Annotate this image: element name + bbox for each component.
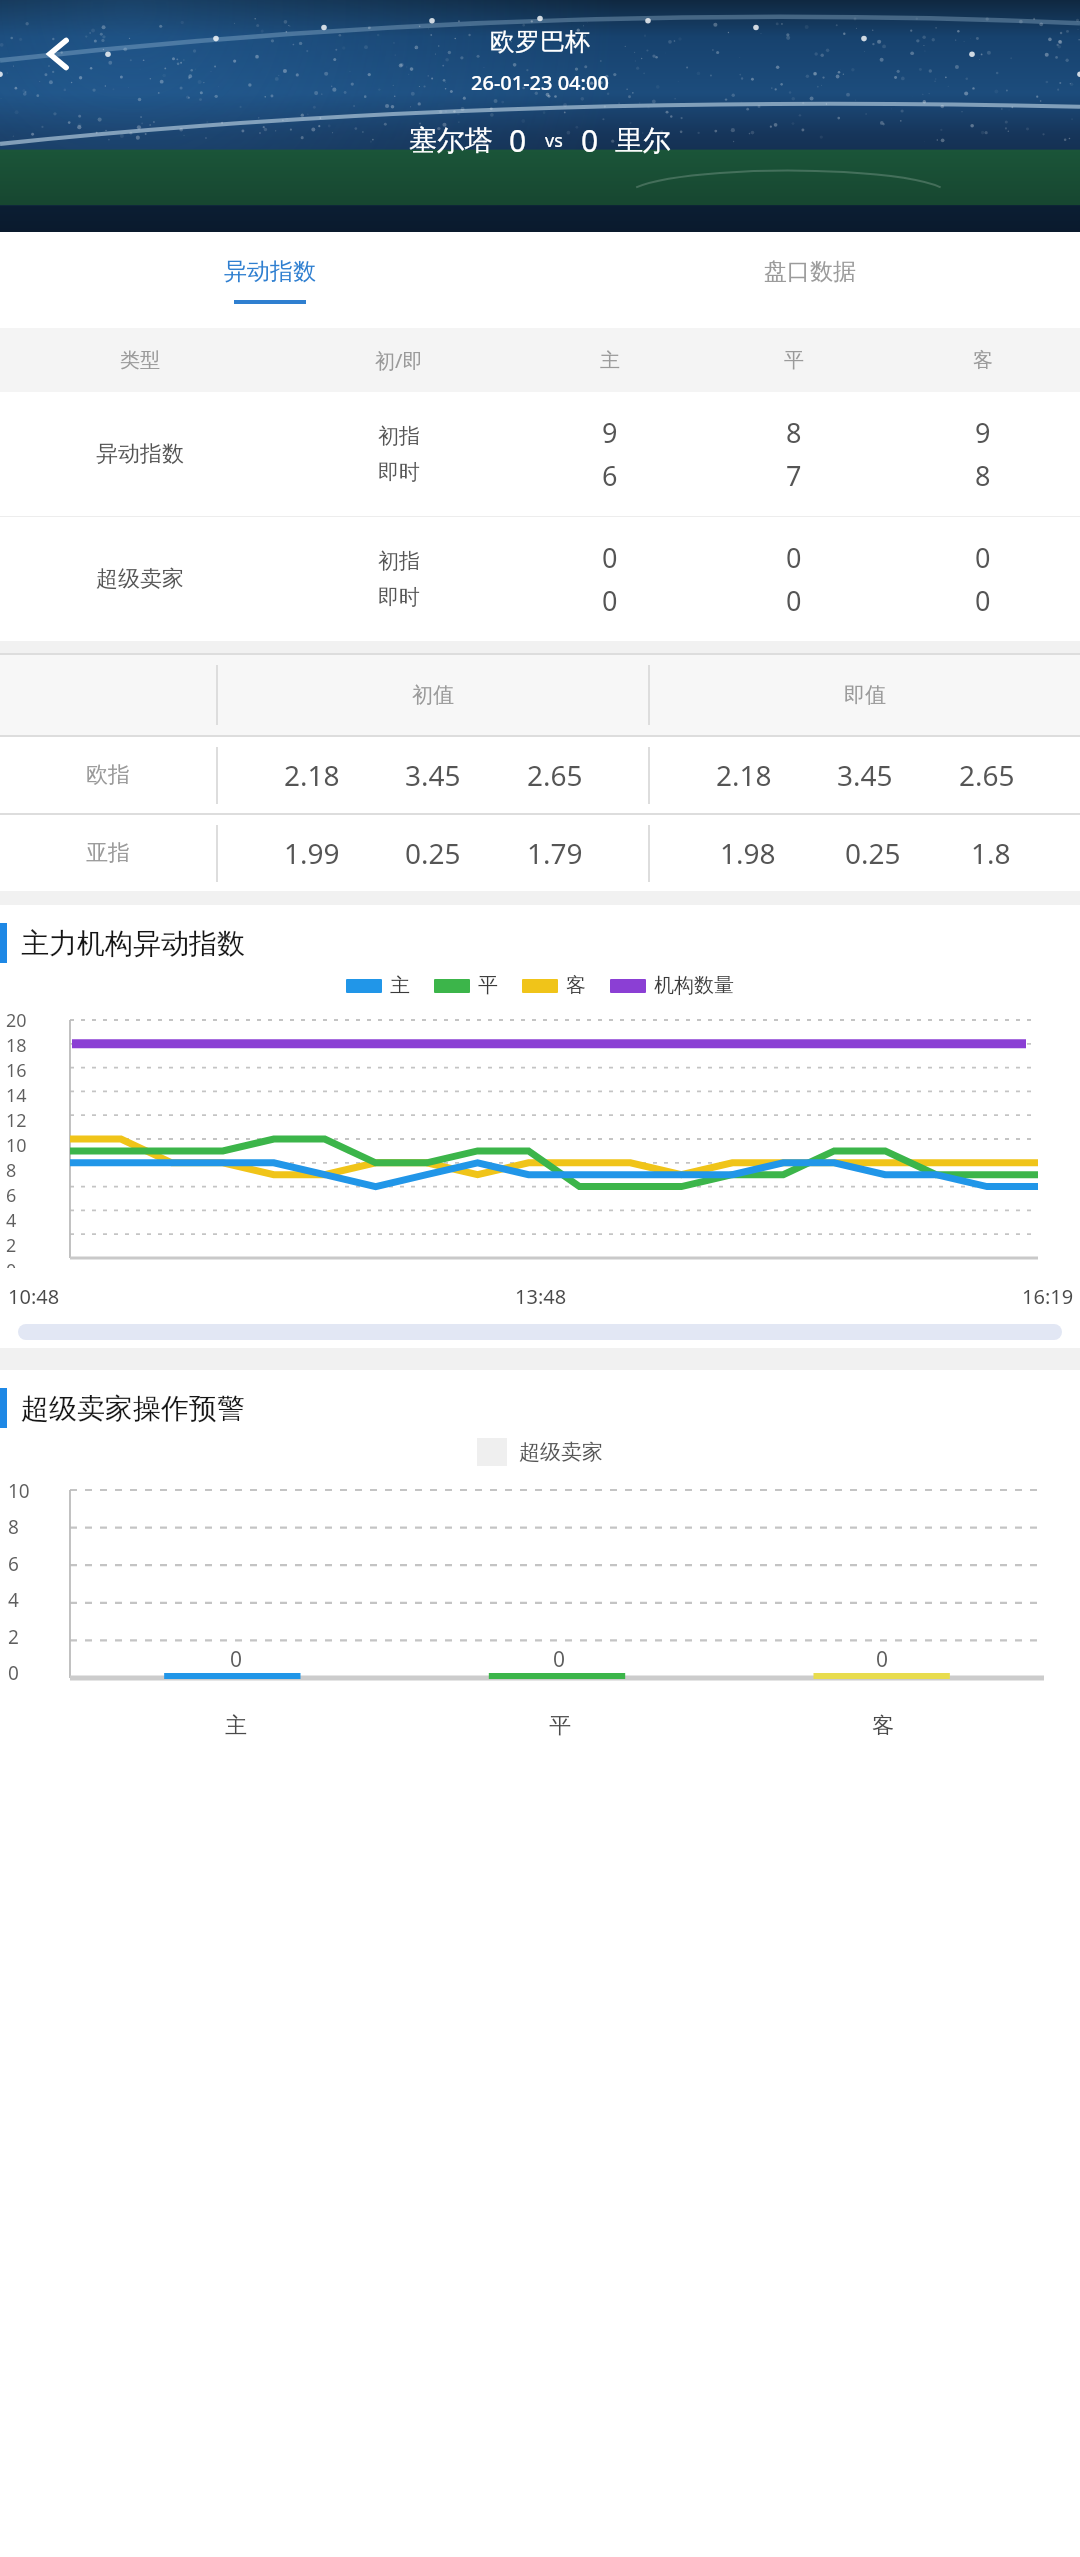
staticText: 4 [8,1587,44,1613]
staticText: 异动指数 [224,257,316,286]
staticText: 6 [602,457,618,494]
staticText: 0 [975,539,991,576]
button[interactable]: Back [26,22,90,86]
staticText: 2.65 [959,756,1015,794]
staticText: 3.45 [405,756,461,794]
staticText: 0 [876,1645,889,1674]
staticText: 主 [390,973,410,998]
staticText: 8 [786,414,802,451]
staticText: 平 [784,348,804,373]
staticText: 8 [6,1158,44,1183]
staticText: 即值 [844,682,886,708]
staticText: 9 [975,414,991,451]
staticText: 盘口数据 [764,257,856,286]
staticText: 超级卖家 [519,1439,603,1465]
staticText: 9 [602,414,618,451]
staticText: 26-01-23 04:00 [471,69,609,96]
staticText: 20 [6,1008,44,1033]
staticText: 7 [786,457,802,494]
staticText: 即时 [378,584,420,610]
button[interactable]: 超级卖家 [0,517,1080,641]
staticText: 18 [6,1033,44,1058]
staticText: 6 [6,1183,44,1208]
staticText: 2 [6,1233,44,1258]
staticText: 里尔 [615,123,671,158]
staticText: 客 [973,348,993,373]
staticText: 10 [8,1478,44,1504]
staticText: 13:48 [515,1283,567,1310]
staticText: 0 [975,582,991,619]
staticText: 0.25 [845,834,901,872]
staticText: 亚指 [86,839,130,867]
staticText: 初/即 [375,347,423,374]
staticText: 2 [8,1624,44,1650]
staticText: 3.45 [837,756,893,794]
staticText: 14 [6,1083,44,1108]
staticText: 主 [600,348,620,373]
button[interactable]: 异动指数 [0,392,1080,516]
staticText: 1.8 [971,834,1011,872]
staticText: 超级卖家操作预警 [21,1391,245,1426]
staticText: 6 [8,1551,44,1577]
staticText: 10 [6,1133,44,1158]
staticText: 超级卖家 [96,565,184,593]
staticText: 0 [786,582,802,619]
staticText: 0.25 [405,834,461,872]
staticText: 初指 [378,423,420,449]
staticText: vs [545,128,563,153]
staticText: 主 [225,1712,247,1740]
staticText: 客 [872,1712,894,1740]
button[interactable]: 异动指数 [0,232,540,328]
staticText: 2.18 [284,756,340,794]
staticText: 16:19 [1022,1283,1074,1310]
staticText: 1.79 [527,834,583,872]
staticText: 8 [975,457,991,494]
staticText: 欧罗巴杯 [490,26,590,57]
staticText: 0 [6,1258,44,1268]
staticText: 0 [786,539,802,576]
staticText: 0 [581,120,599,161]
staticText: 2.65 [527,756,583,794]
staticText: 4 [6,1208,44,1233]
staticText: 0 [230,1645,243,1674]
staticText: 1.98 [720,834,776,872]
staticText: 异动指数 [96,440,184,468]
button[interactable]: 亚指 [0,815,1080,891]
staticText: 主力机构异动指数 [21,926,245,961]
button[interactable]: 欧指 [0,737,1080,813]
staticText: 12 [6,1108,44,1133]
staticText: 1.99 [284,834,340,872]
button[interactable]: 盘口数据 [540,232,1080,328]
staticText: 平 [478,973,498,998]
staticText: 类型 [120,348,160,373]
staticText: 欧指 [86,761,130,789]
staticText: 塞尔塔 [409,123,493,158]
staticText: 16 [6,1058,44,1083]
staticText: 0 [509,120,527,161]
staticText: 10:48 [8,1283,60,1310]
staticText: 8 [8,1514,44,1540]
staticText: 机构数量 [654,973,734,998]
staticText: 0 [553,1645,566,1674]
staticText: 平 [549,1712,571,1740]
staticText: 2.18 [716,756,772,794]
staticText: 即时 [378,459,420,485]
staticText: 0 [602,582,618,619]
staticText: 初值 [412,682,454,708]
staticText: 客 [566,973,586,998]
staticText: 0 [8,1660,44,1686]
staticText: 初指 [378,548,420,574]
staticText: 0 [602,539,618,576]
